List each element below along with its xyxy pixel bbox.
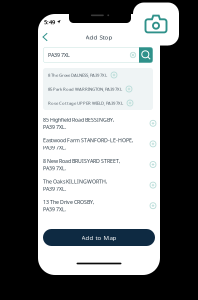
staticText: 85 Park Road WARRINGTON, PA39 7XL — [48, 86, 122, 92]
staticText: 5:49 — [44, 18, 55, 26]
staticText: PA39 7XL — [48, 51, 70, 59]
button[interactable]: The Oaks KILLINGWORTH, — [38, 175, 160, 195]
button[interactable]: Back — [38, 31, 52, 43]
staticText: 8 The Grove DALNESS, PA39 7XL — [48, 72, 107, 78]
button[interactable]: Rose Cottage UPPER WIELD, PA39 7XL — [43, 96, 153, 110]
button[interactable]: 8 New Road BRUISYARD STREET, — [38, 154, 160, 175]
staticText: 13 The Drive CROSBY, — [43, 198, 94, 206]
staticText: Eastwood Farm STANFORD-LE-HOPE, — [43, 137, 133, 144]
button[interactable]: Clear — [127, 48, 139, 62]
button[interactable]: Search — [139, 47, 153, 63]
staticText: 85 Highfield Road BESSINGBY, — [43, 116, 114, 123]
button[interactable]: 13 The Drive CROSBY, — [38, 195, 160, 216]
button[interactable]: Add to Map — [43, 229, 155, 246]
staticText: Add to Map — [81, 233, 116, 242]
staticText: PA39 7XL. — [43, 144, 66, 151]
staticText: 8 New Road BRUISYARD STREET, — [43, 157, 120, 164]
staticText: PA39 7XL. — [43, 123, 66, 130]
staticText: PA39 7XL. — [43, 185, 66, 192]
staticText: PA39 7XL. — [43, 206, 66, 213]
staticText: PA39 7XL. — [43, 165, 66, 172]
staticText: Add Stop — [85, 33, 112, 41]
button[interactable]: Eastwood Farm STANFORD-LE-HOPE, — [38, 134, 160, 154]
button[interactable]: 85 Highfield Road BESSINGBY, — [38, 113, 160, 134]
staticText: The Oaks KILLINGWORTH, — [43, 178, 107, 185]
button[interactable]: 85 Park Road WARRINGTON, PA39 7XL — [43, 82, 153, 96]
staticText: Rose Cottage UPPER WIELD, PA39 7XL — [48, 100, 123, 106]
button[interactable]: 8 The Grove DALNESS, PA39 7XL — [43, 68, 153, 82]
